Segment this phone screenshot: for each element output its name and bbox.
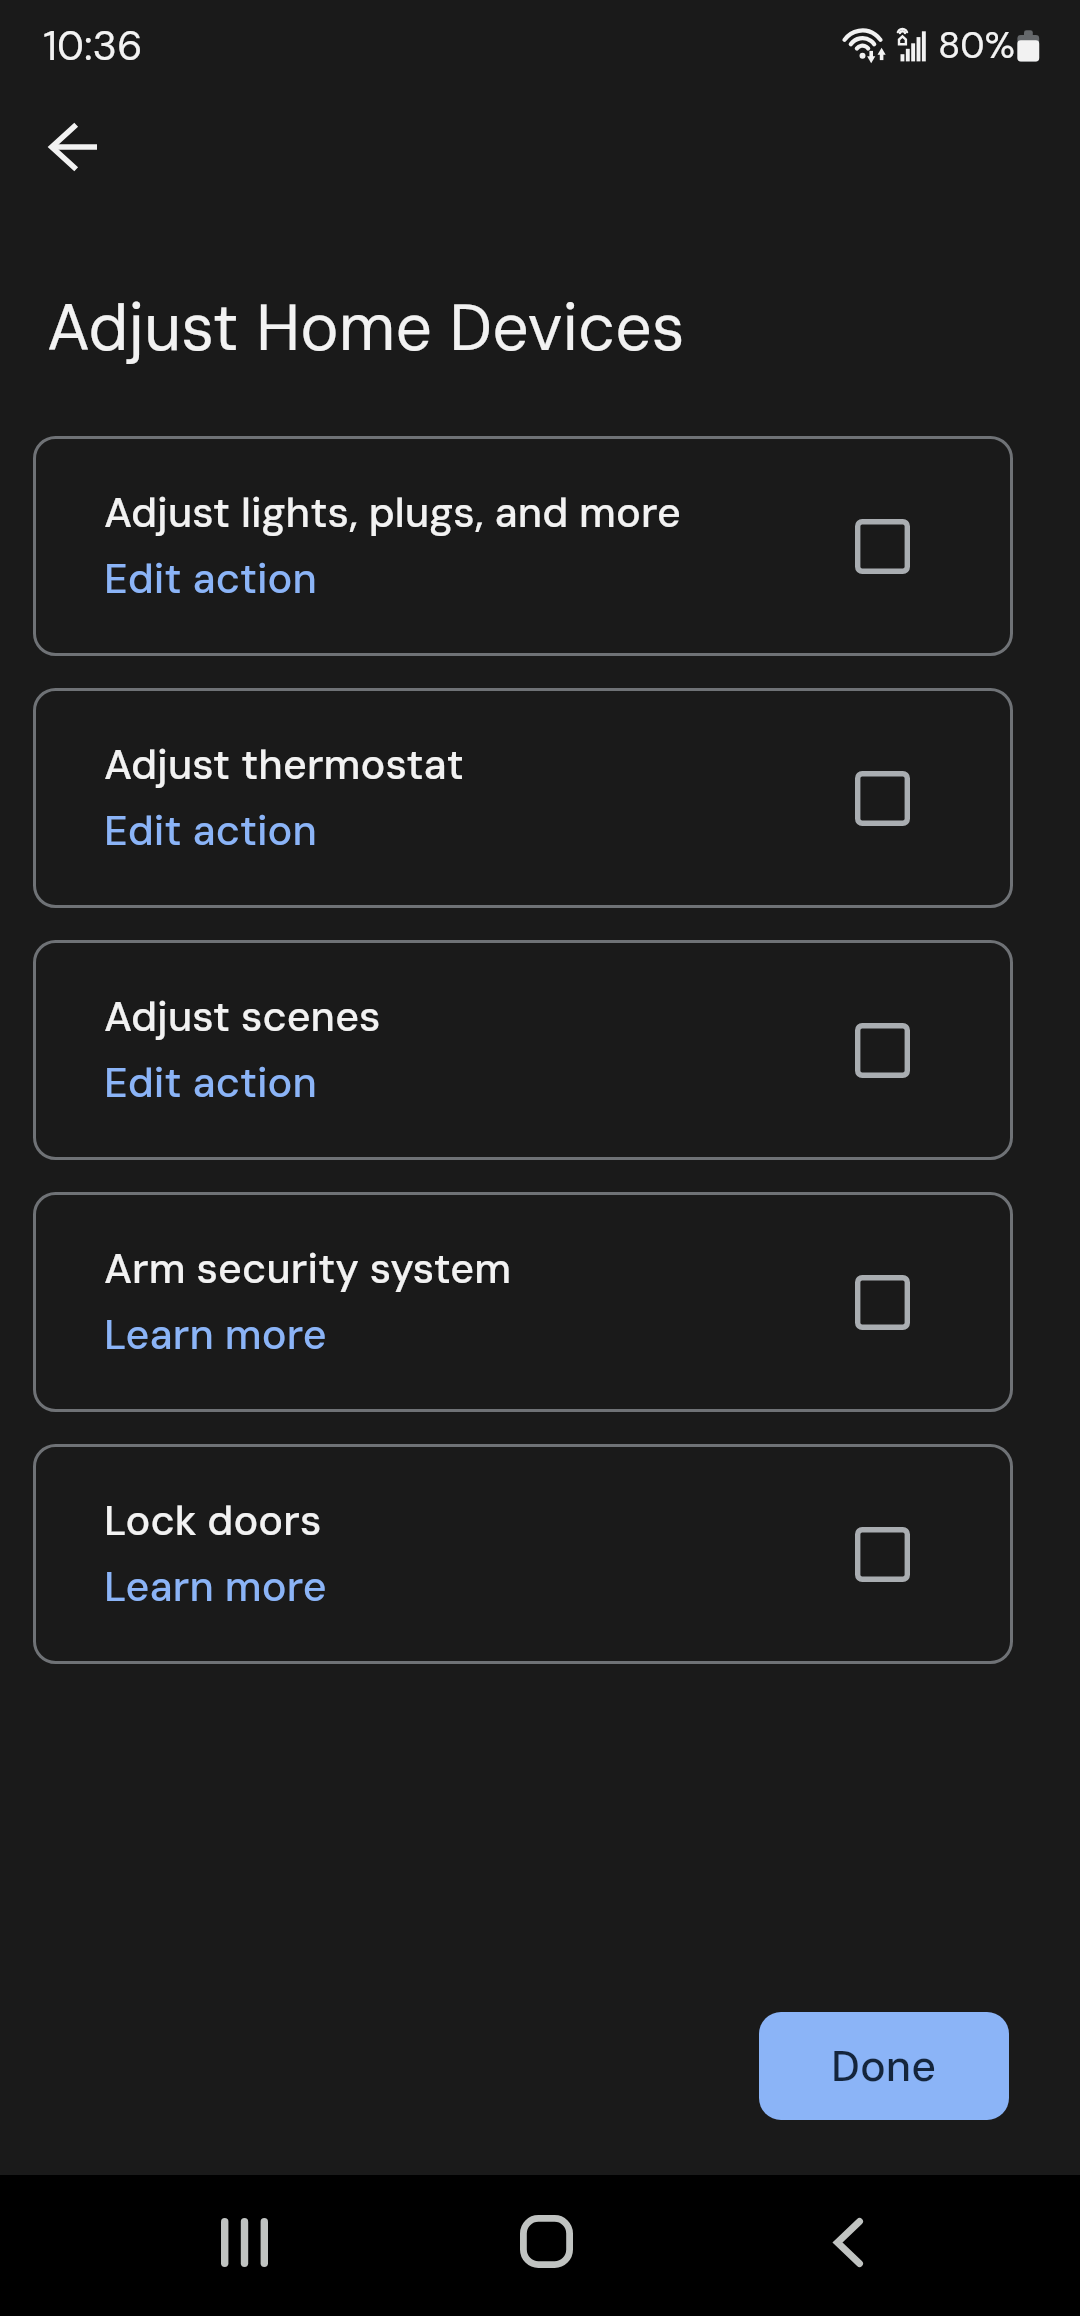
staticText: Adjust lights, plugs, and more (104, 486, 681, 540)
staticText: 80% (938, 21, 1016, 69)
button[interactable]: Learn more (104, 1560, 327, 1614)
button[interactable]: Select Arm security system (855, 1275, 910, 1330)
button[interactable]: Adjust scenes (33, 940, 1013, 1160)
button[interactable]: Lock doors (33, 1444, 1013, 1664)
staticText: Adjust Home Devices (47, 286, 685, 370)
button[interactable]: Home (490, 2185, 602, 2297)
button[interactable]: Select Adjust thermostat (855, 771, 910, 826)
button[interactable]: Arm security system (33, 1192, 1013, 1412)
staticText: Adjust thermostat (104, 738, 464, 792)
staticText: Lock doors (104, 1494, 322, 1548)
button[interactable]: Learn more (104, 1308, 327, 1362)
button[interactable]: Adjust thermostat (33, 688, 1013, 908)
button[interactable]: Select Adjust lights, plugs, and more (855, 519, 910, 574)
staticText: Adjust scenes (104, 990, 381, 1044)
staticText: Done (831, 2038, 937, 2094)
button[interactable]: Done (759, 2012, 1009, 2120)
button[interactable]: Adjust lights, plugs, and more (33, 436, 1013, 656)
button[interactable]: Edit action (104, 552, 317, 606)
button[interactable]: Edit action (104, 804, 317, 858)
button[interactable]: Recent apps (188, 2186, 300, 2298)
button[interactable]: Back (792, 2186, 904, 2298)
button[interactable]: Select Adjust scenes (855, 1023, 910, 1078)
staticText: Arm security system (104, 1242, 512, 1296)
staticText: 10:36 (43, 19, 143, 72)
button[interactable]: Back (34, 108, 112, 186)
button[interactable]: Select Lock doors (855, 1527, 910, 1582)
button[interactable]: Edit action (104, 1056, 317, 1110)
